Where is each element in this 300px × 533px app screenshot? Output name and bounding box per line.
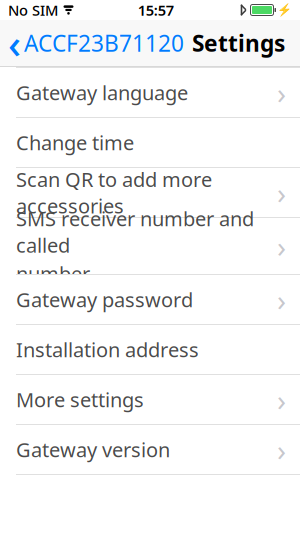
- staticText: More settings: [16, 386, 144, 413]
- staticText: Gateway language: [16, 79, 188, 106]
- button[interactable]: Gateway language: [0, 68, 300, 117]
- staticText: ›: [277, 280, 286, 319]
- staticText: ›: [277, 430, 286, 469]
- staticText: SMS receiver number and called: [16, 205, 254, 258]
- staticText: ›: [277, 73, 286, 112]
- staticText: Gateway version: [16, 436, 170, 463]
- button[interactable]: More settings: [0, 375, 300, 424]
- button[interactable]: Scan QR to add more accessories: [0, 168, 300, 217]
- staticText: ACCF23B71120: [24, 28, 184, 58]
- staticText: number: [16, 260, 90, 287]
- staticText: No SIM: [8, 0, 58, 20]
- button[interactable]: Gateway password: [0, 275, 300, 324]
- button[interactable]: SMS receiver number and called: [0, 218, 300, 274]
- staticText: ›: [277, 380, 286, 419]
- staticText: Settings: [192, 28, 285, 58]
- staticText: Gateway password: [16, 286, 193, 313]
- staticText: Scan QR to add more accessories: [16, 166, 212, 219]
- staticText: Installation address: [16, 336, 199, 363]
- staticText: ›: [277, 173, 286, 212]
- button[interactable]: Gateway version: [0, 425, 300, 474]
- button[interactable]: Installation address: [0, 325, 300, 374]
- staticText: 15:57: [138, 0, 174, 20]
- staticText: ‹: [8, 16, 21, 69]
- button[interactable]: ‹: [0, 20, 188, 66]
- staticText: Change time: [16, 129, 134, 156]
- staticText: ⚡: [277, 3, 292, 17]
- staticText: ›: [277, 226, 286, 265]
- button[interactable]: Change time: [0, 118, 300, 167]
